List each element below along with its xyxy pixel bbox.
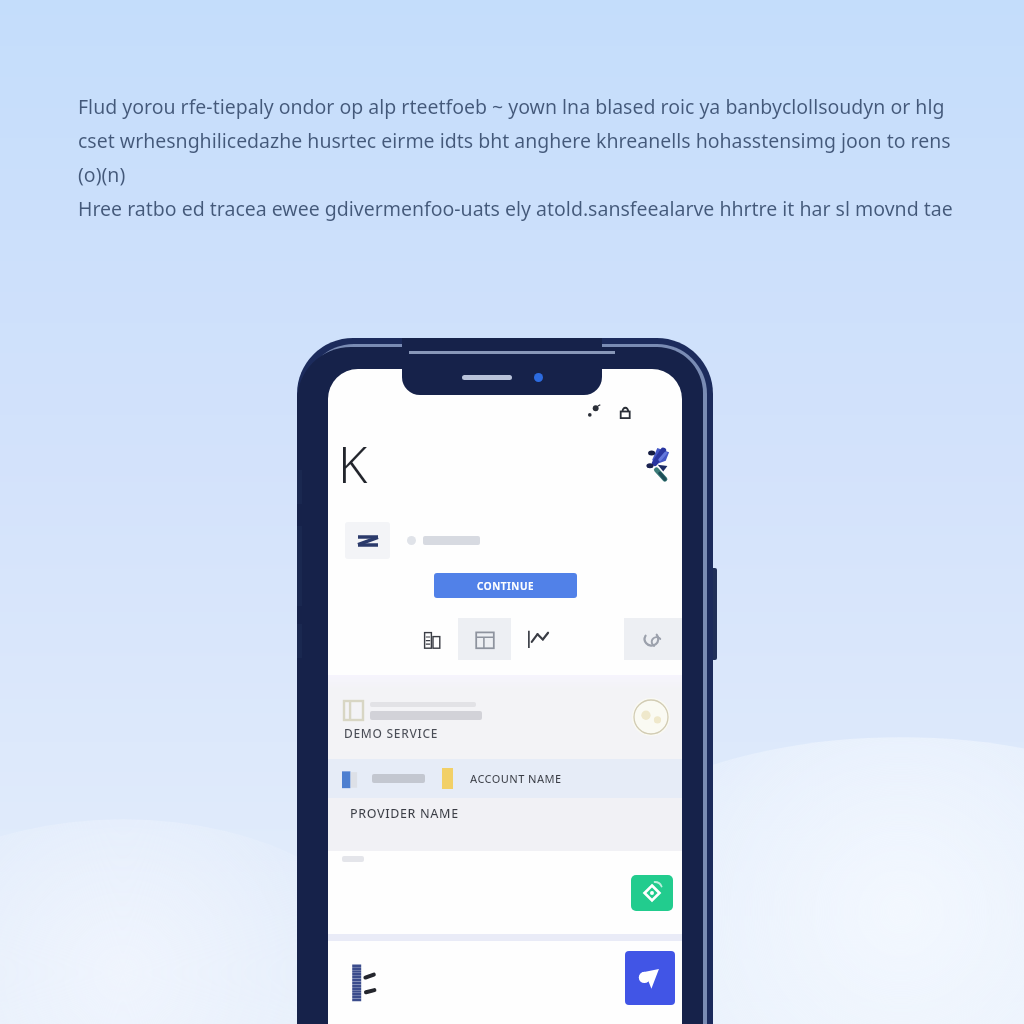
- button[interactable]: Notifications: [584, 404, 604, 424]
- button[interactable]: More: [624, 618, 682, 660]
- button[interactable]: Scan: [631, 875, 673, 911]
- staticText: K: [338, 430, 368, 498]
- button[interactable]: Calendar: [458, 618, 511, 660]
- button[interactable]: Avatar: [632, 698, 670, 736]
- staticText: Hree ratbo ed tracea ewee gdivermenfoo-u…: [78, 195, 952, 222]
- staticText: cset wrhesnghilicedazhe husrtec eirme id…: [78, 127, 951, 154]
- button[interactable]: Edit list: [342, 959, 384, 1007]
- staticText: ACCOUNT NAME: [470, 771, 562, 786]
- button[interactable]: Brand logo: [638, 443, 680, 485]
- staticText: CONTINUE: [477, 579, 535, 593]
- staticText: (o)(n): [78, 161, 126, 188]
- button[interactable]: Secure: [615, 404, 635, 424]
- button[interactable]: Trend: [522, 623, 554, 655]
- staticText: DEMO SERVICE: [344, 725, 439, 741]
- button[interactable]: Share: [625, 951, 675, 1005]
- button[interactable]: Document thumbnail: [345, 522, 390, 559]
- staticText: Flud yorou rfe-tiepaly ondor op alp rtee…: [78, 93, 945, 120]
- button[interactable]: K: [334, 428, 372, 500]
- staticText: PROVIDER NAME: [350, 805, 459, 822]
- button[interactable]: Chart: [421, 627, 445, 651]
- button[interactable]: CONTINUE: [434, 573, 577, 598]
